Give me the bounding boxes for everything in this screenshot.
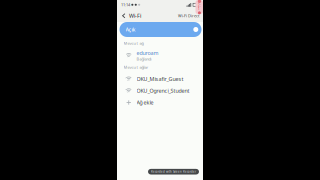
staticText: OKU_Ogrenci_Student xyxy=(136,87,189,94)
button[interactable]: OKU_Ogrenci_Student xyxy=(117,85,203,97)
staticText: Recorded with Screen Recorder xyxy=(151,170,196,173)
button[interactable]: Ağ ekle xyxy=(117,97,203,108)
staticText: Açık xyxy=(125,26,135,33)
staticText: 11:14 xyxy=(121,2,130,7)
staticText: OKU_Misafir_Guest xyxy=(136,75,183,82)
button[interactable]: Wi-Fi xyxy=(117,9,144,22)
staticText: Mevcut ağlar xyxy=(123,65,148,70)
staticText: Wi-Fi Direct xyxy=(178,13,199,18)
staticText: 2:1 xyxy=(198,4,201,11)
staticText: eduroam xyxy=(136,49,158,56)
staticText: Bağlandı xyxy=(136,56,151,62)
staticText: Mevcut ağ xyxy=(123,41,143,46)
staticText: Ağ ekle xyxy=(136,99,153,106)
button[interactable]: Açık xyxy=(119,22,201,37)
button[interactable]: eduroam xyxy=(117,49,203,61)
button[interactable]: Wi-Fi Direct xyxy=(175,9,203,22)
button[interactable]: OKU_Misafir_Guest xyxy=(117,73,203,85)
staticText: Wi-Fi xyxy=(129,12,141,19)
